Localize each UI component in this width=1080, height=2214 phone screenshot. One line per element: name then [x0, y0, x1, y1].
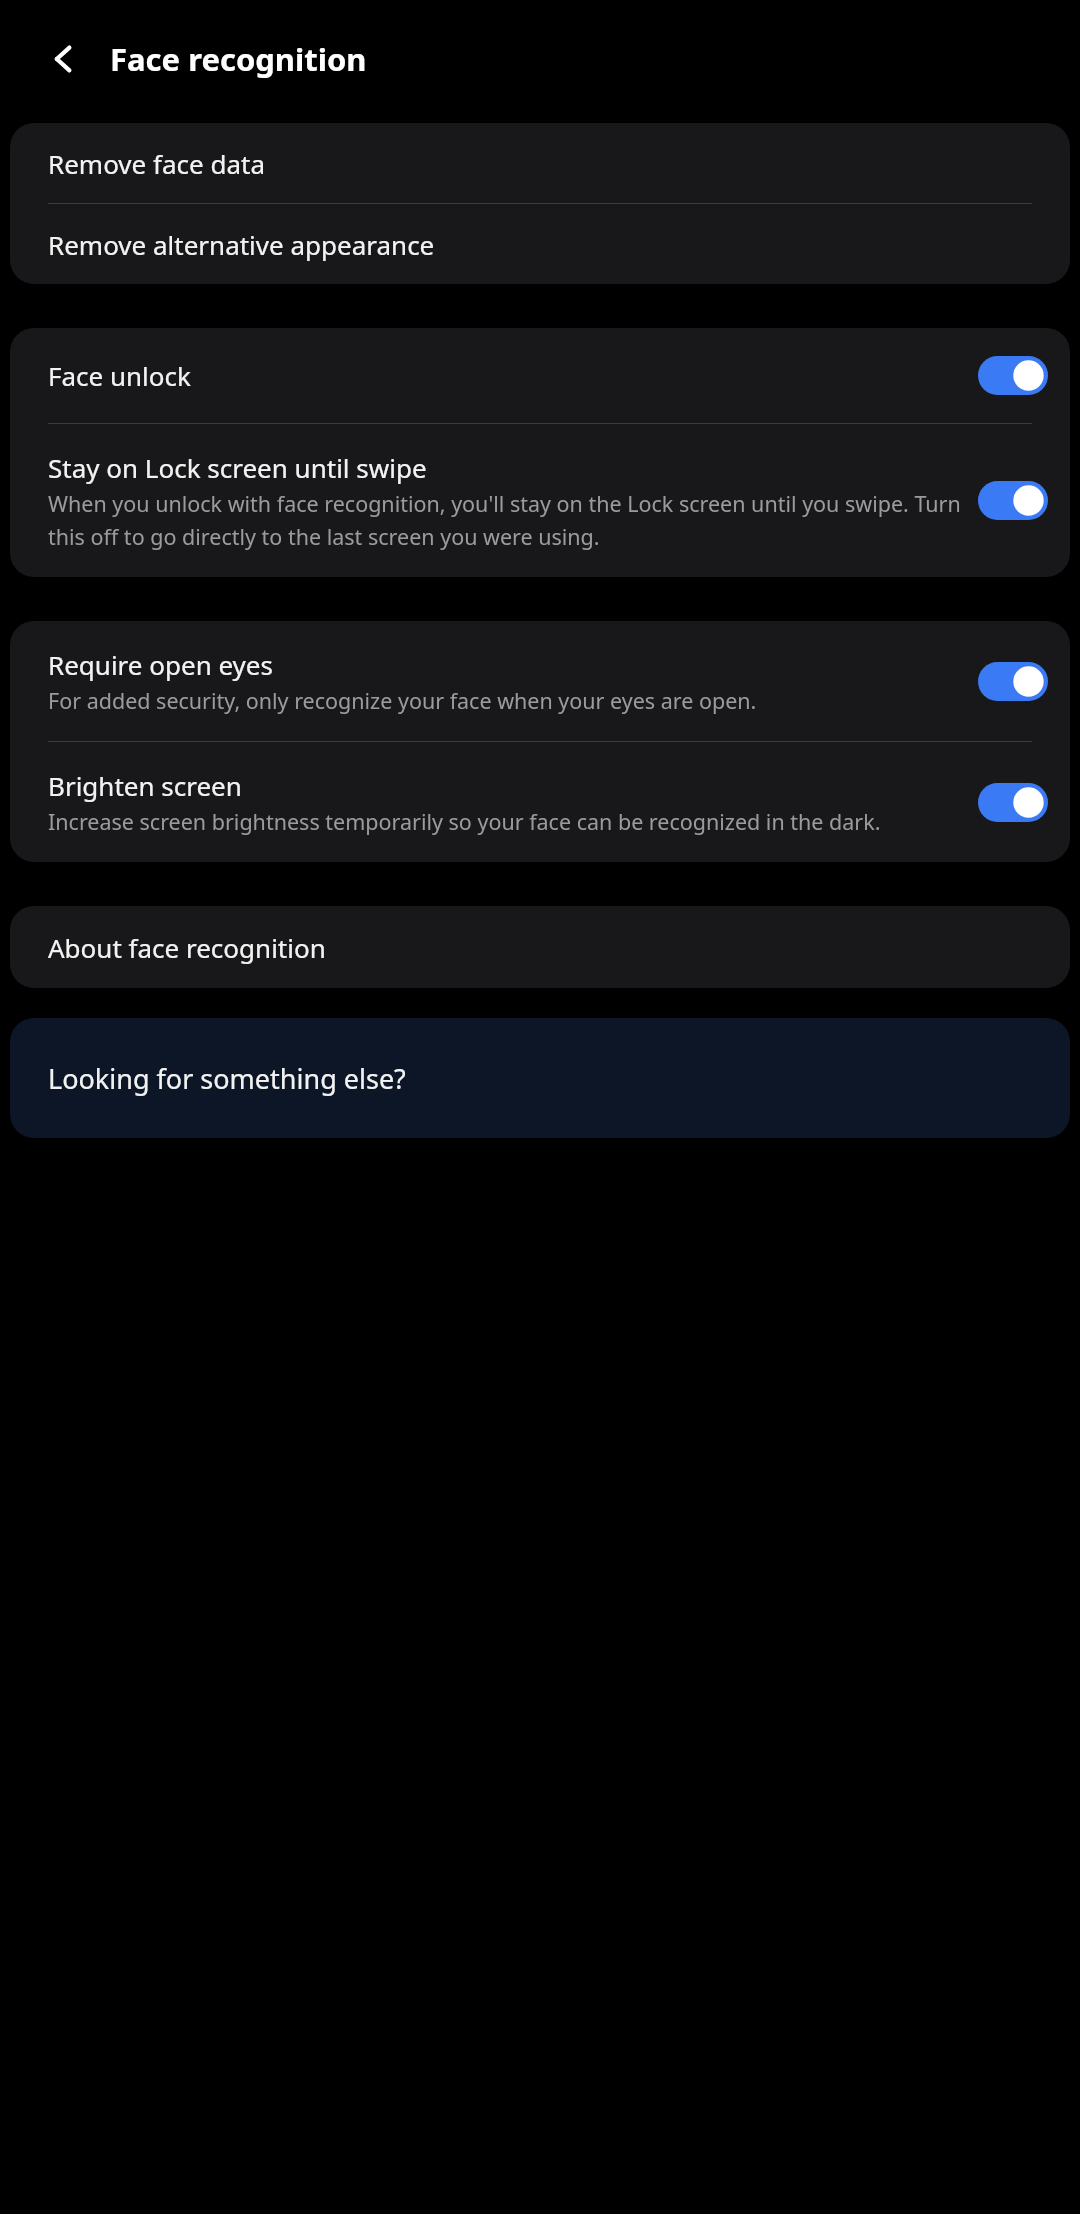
button[interactable]: Toggle: [978, 662, 1048, 701]
staticText: Remove face data: [48, 146, 265, 181]
staticText: Looking for something else?: [48, 1060, 406, 1097]
staticText: When you unlock with face recognition, y…: [48, 489, 962, 551]
button[interactable]: Looking for something else?: [10, 1018, 1070, 1138]
button[interactable]: Require open eyes: [10, 621, 1070, 741]
staticText: Face recognition: [110, 38, 367, 80]
button[interactable]: Toggle: [978, 481, 1048, 520]
button[interactable]: Back: [36, 31, 92, 87]
button[interactable]: Remove face data: [10, 123, 1070, 203]
button[interactable]: Stay on Lock screen until swipe: [10, 424, 1070, 577]
staticText: Require open eyes: [48, 647, 273, 682]
staticText: Brighten screen: [48, 768, 242, 803]
staticText: For added security, only recognize your …: [48, 686, 757, 715]
button[interactable]: Toggle: [978, 356, 1048, 395]
button[interactable]: Toggle: [978, 783, 1048, 822]
staticText: About face recognition: [48, 930, 326, 965]
staticText: Face unlock: [48, 358, 191, 393]
staticText: Remove alternative appearance: [48, 227, 435, 262]
button[interactable]: Remove alternative appearance: [10, 204, 1070, 284]
button[interactable]: About face recognition: [10, 906, 1070, 988]
staticText: Stay on Lock screen until swipe: [48, 450, 427, 485]
staticText: Increase screen brightness temporarily s…: [48, 807, 881, 836]
button[interactable]: Brighten screen: [10, 742, 1070, 862]
button[interactable]: Face unlock: [10, 328, 1070, 423]
